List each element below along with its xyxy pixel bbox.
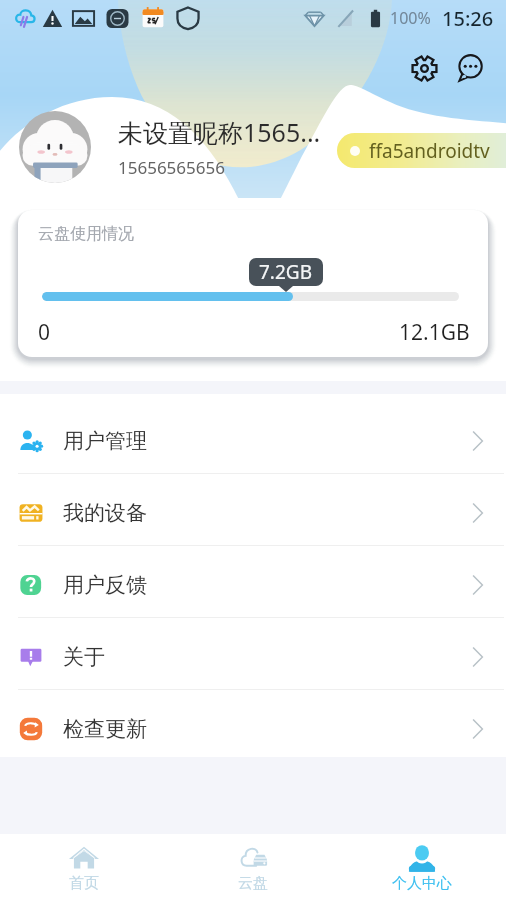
- button[interactable]: 检查更新: [0, 690, 506, 761]
- staticText: 关于: [63, 644, 105, 670]
- staticText: 未设置昵称1565...: [118, 115, 321, 149]
- button[interactable]: Messages: [447, 45, 493, 91]
- button[interactable]: 我的设备: [0, 474, 506, 546]
- staticText: 15:26: [442, 5, 494, 32]
- button[interactable]: 关于: [0, 618, 506, 690]
- staticText: 7.2GB: [259, 259, 313, 285]
- staticText: 我的设备: [63, 500, 147, 526]
- button[interactable]: Settings: [401, 45, 447, 91]
- staticText: ffa5androidtv: [369, 138, 490, 164]
- staticText: 15656565656: [118, 156, 225, 179]
- staticText: 100%: [390, 7, 431, 29]
- staticText: 用户管理: [63, 428, 147, 454]
- button[interactable]: 云盘: [168, 834, 337, 900]
- staticText: 12.1GB: [399, 318, 470, 347]
- staticText: 首页: [69, 874, 99, 893]
- button[interactable]: 用户反馈: [0, 546, 506, 618]
- staticText: 用户反馈: [63, 572, 147, 598]
- button[interactable]: 用户管理: [0, 402, 506, 474]
- staticText: 云盘: [238, 874, 268, 893]
- staticText: 0: [38, 318, 51, 347]
- staticText: 个人中心: [392, 874, 452, 893]
- button[interactable]: ffa5androidtv: [337, 133, 506, 168]
- staticText: 检查更新: [63, 716, 147, 742]
- staticText: 云盘使用情况: [38, 224, 134, 244]
- button[interactable]: 个人中心: [337, 834, 506, 900]
- button[interactable]: 首页: [0, 834, 168, 900]
- button[interactable]: Avatar: [19, 111, 91, 183]
